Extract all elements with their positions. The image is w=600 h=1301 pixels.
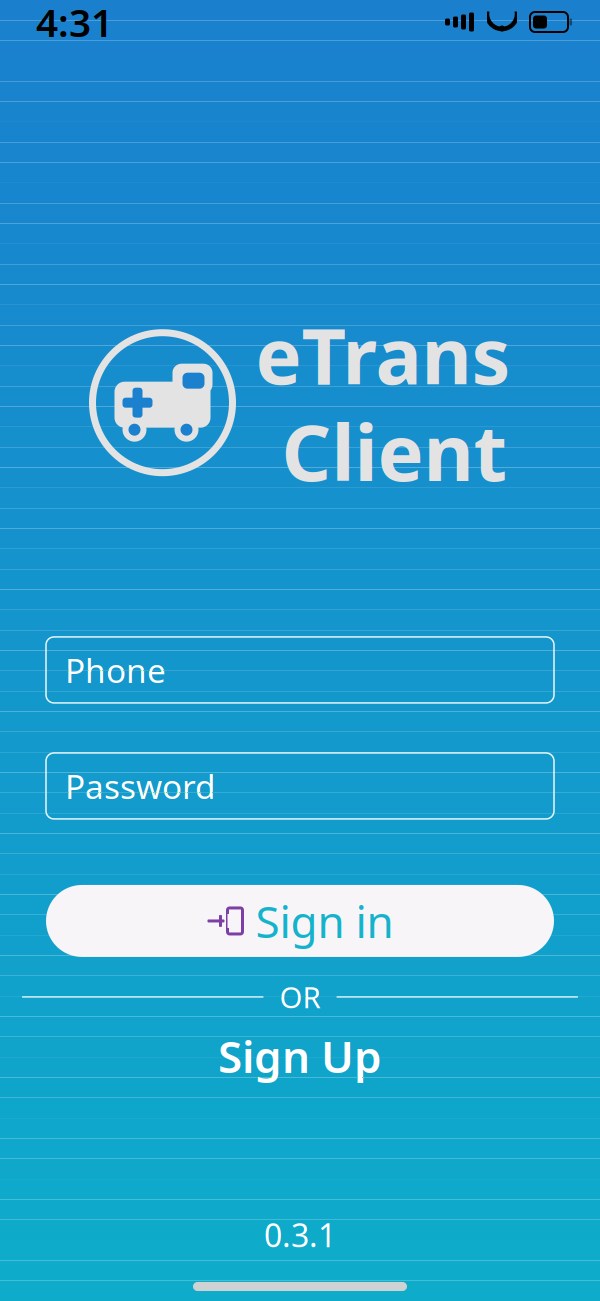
- button[interactable]: Sign in: [46, 885, 554, 957]
- staticText: OR: [279, 977, 320, 1016]
- staticText: 4:31: [36, 0, 113, 48]
- staticText: eTrans: [255, 303, 510, 406]
- button[interactable]: Sign Up: [46, 1033, 554, 1079]
- staticText: Sign Up: [218, 1027, 382, 1085]
- staticText: Password: [65, 764, 216, 808]
- staticText: Sign in: [255, 892, 393, 950]
- staticText: Client: [281, 400, 507, 502]
- staticText: Phone: [65, 648, 166, 692]
- staticText: 0.3.1: [264, 1213, 336, 1256]
